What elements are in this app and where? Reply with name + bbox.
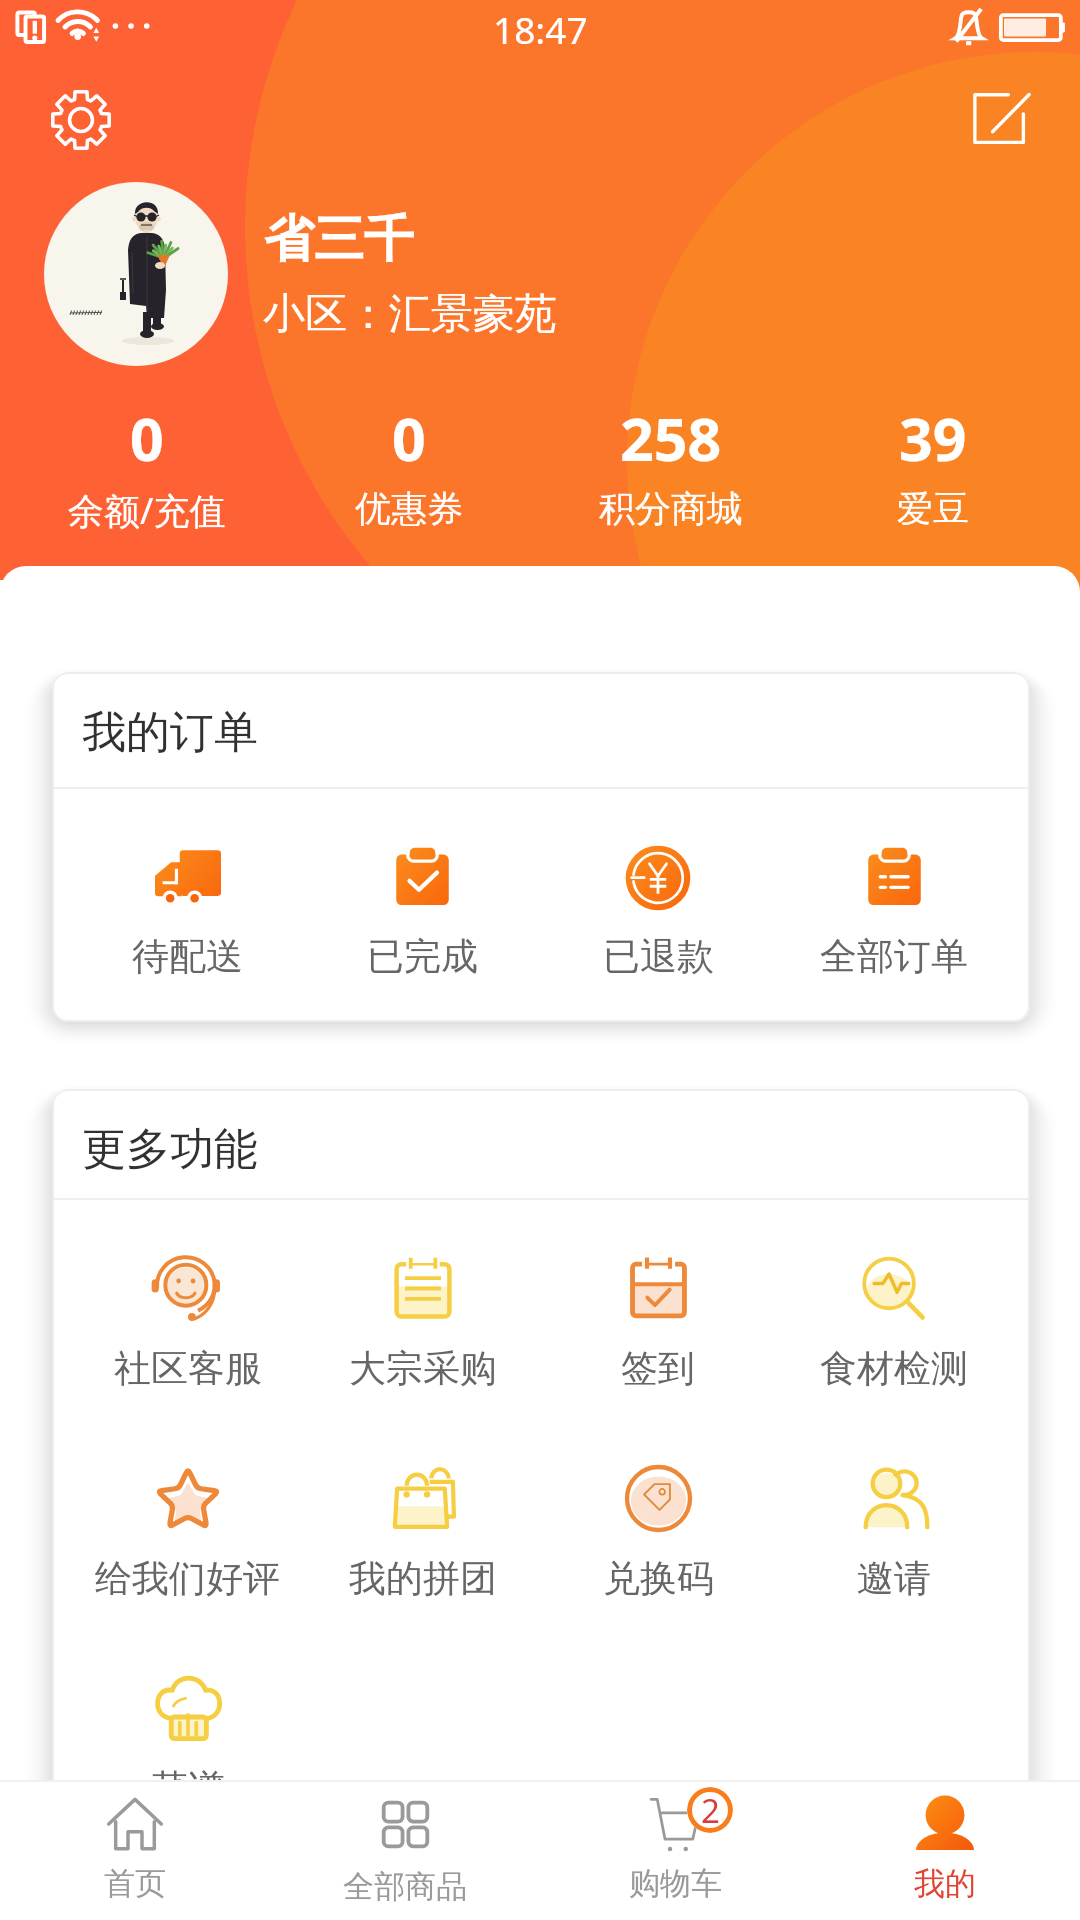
button[interactable]: 待配送: [70, 845, 305, 980]
button[interactable]: 258: [540, 398, 802, 531]
staticText: 小区：汇景豪苑: [263, 288, 557, 341]
button[interactable]: Edit profile: [970, 89, 1031, 150]
button[interactable]: 已退款: [540, 845, 776, 980]
staticText: 全部订单: [820, 933, 968, 980]
button[interactable]: 2: [540, 1780, 810, 1920]
staticText: 39: [899, 398, 967, 478]
staticText: 0: [130, 398, 164, 478]
staticText: 积分商城: [599, 486, 743, 531]
staticText: 我的拼团: [349, 1555, 497, 1602]
staticText: 购物车: [629, 1864, 722, 1903]
staticText: 已退款: [603, 933, 714, 980]
button[interactable]: 我的: [810, 1780, 1080, 1920]
button[interactable]: Avatar: [44, 182, 228, 366]
staticText: 我的: [914, 1864, 976, 1903]
button[interactable]: 给我们好评: [70, 1462, 305, 1602]
staticText: 优惠券: [355, 486, 463, 531]
staticText: 待配送: [132, 933, 243, 980]
button[interactable]: 首页: [0, 1780, 270, 1920]
button[interactable]: 0: [278, 398, 540, 531]
staticText: 余额/充值: [68, 486, 226, 535]
staticText: 签到: [621, 1345, 695, 1392]
staticText: 首页: [104, 1864, 166, 1903]
button[interactable]: 0: [16, 398, 278, 535]
staticText: 食材检测: [820, 1345, 968, 1392]
staticText: 0: [392, 398, 426, 478]
staticText: 爱豆: [897, 486, 969, 531]
staticText: 省三千: [264, 208, 414, 271]
staticText: 社区客服: [114, 1345, 262, 1392]
button[interactable]: 菜谱: [70, 1672, 305, 1812]
button[interactable]: 大宗采购: [305, 1252, 540, 1392]
button[interactable]: 社区客服: [70, 1252, 305, 1392]
staticText: 全部商品: [343, 1867, 467, 1906]
button[interactable]: 39: [802, 398, 1064, 531]
staticText: 更多功能: [82, 1122, 258, 1177]
button[interactable]: 已完成: [305, 845, 540, 980]
staticText: 18:47: [493, 4, 588, 54]
button[interactable]: 全部订单: [776, 845, 1012, 980]
button[interactable]: 兑换码: [540, 1462, 776, 1602]
staticText: 258: [620, 398, 722, 478]
staticText: 2: [701, 1788, 720, 1833]
button[interactable]: 食材检测: [776, 1252, 1012, 1392]
staticText: 菜谱: [151, 1765, 225, 1812]
button[interactable]: 全部商品: [270, 1780, 540, 1920]
button[interactable]: 我的拼团: [305, 1462, 540, 1602]
staticText: 邀请: [857, 1555, 931, 1602]
button[interactable]: Settings: [50, 89, 112, 151]
staticText: 大宗采购: [349, 1345, 497, 1392]
staticText: 已完成: [367, 933, 478, 980]
staticText: 兑换码: [603, 1555, 714, 1602]
button[interactable]: 签到: [540, 1252, 776, 1392]
staticText: 我的订单: [82, 705, 258, 760]
button[interactable]: 邀请: [776, 1462, 1012, 1602]
staticText: 给我们好评: [95, 1555, 280, 1602]
